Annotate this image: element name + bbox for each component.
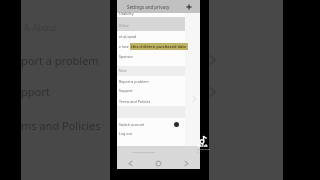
staticText: et ql-qood [119, 34, 137, 39]
staticText: Support [119, 88, 133, 93]
button[interactable]: Support [117, 86, 200, 95]
staticText: More [119, 69, 127, 73]
staticText: Terms and Policies [119, 99, 151, 104]
button[interactable]: Add [185, 3, 193, 11]
button[interactable]: Usability [117, 9, 200, 18]
staticText: @user.name [197, 147, 211, 153]
staticText: Settings and privacy [127, 4, 170, 10]
staticText: Online [119, 24, 129, 28]
button[interactable]: Report a problem [117, 77, 200, 86]
staticText: pport [21, 84, 50, 99]
button[interactable]: Switch account [117, 120, 200, 129]
staticText: Switch account [119, 122, 145, 127]
staticText: Sponsor [119, 54, 133, 59]
button[interactable]: et ql-qood [117, 32, 200, 41]
button[interactable]: Terms and Policies [117, 97, 200, 106]
button[interactable]: Back [117, 158, 144, 168]
staticText: Report a problem [119, 79, 149, 84]
staticText: port a problem [21, 53, 99, 68]
staticText: Usability [119, 11, 134, 16]
staticText: & About [24, 22, 57, 34]
staticText: ms and Policies [21, 118, 101, 133]
button[interactable]: e love [117, 42, 200, 51]
button[interactable]: Sponsor [117, 52, 200, 61]
staticText: Log out [119, 131, 132, 136]
staticText: TikTok [197, 144, 208, 148]
staticText: this children purchased date [131, 44, 187, 49]
button[interactable]: Home [144, 158, 172, 168]
button[interactable]: Log out [117, 129, 200, 138]
staticText: e love [119, 44, 130, 49]
button[interactable]: Recents [172, 158, 200, 168]
